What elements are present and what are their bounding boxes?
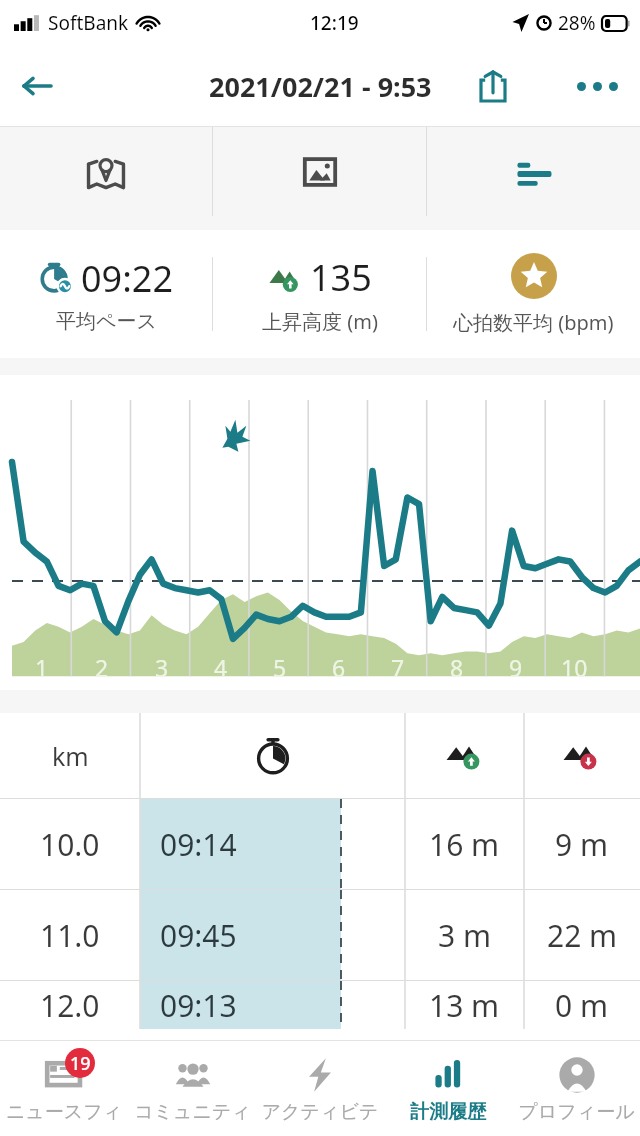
staticText: 上昇高度 (m): [262, 308, 378, 335]
staticText: 10: [561, 652, 588, 683]
staticText: アクティビティ: [256, 1100, 384, 1124]
button[interactable]: Photos: [213, 127, 426, 216]
staticText: 09:22: [81, 254, 174, 303]
button[interactable]: 11.0: [0, 890, 640, 980]
staticText: 19: [70, 1051, 91, 1076]
button[interactable]: 19: [0, 1041, 128, 1136]
staticText: 9: [509, 652, 523, 683]
staticText: 11.0: [40, 915, 100, 956]
staticText: 135: [310, 253, 372, 302]
button[interactable]: アクティビティ: [256, 1041, 384, 1136]
button[interactable]: Back: [6, 56, 66, 116]
button[interactable]: プロフィール: [512, 1041, 640, 1136]
staticText: 16 m: [429, 824, 500, 865]
staticText: 5: [273, 652, 287, 683]
button[interactable]: Map: [0, 127, 212, 216]
staticText: 3: [155, 652, 169, 683]
button[interactable]: Average pace: [0, 230, 212, 358]
staticText: 2: [95, 652, 109, 683]
staticText: 8: [450, 652, 464, 683]
staticText: 13 m: [429, 985, 500, 1026]
staticText: km: [52, 739, 89, 773]
staticText: 22 m: [547, 915, 618, 956]
button[interactable]: Average heart rate: [427, 230, 640, 358]
staticText: 1: [35, 652, 49, 683]
staticText: SoftBank: [48, 10, 129, 36]
staticText: 28%: [558, 10, 596, 36]
staticText: 09:13: [160, 985, 237, 1026]
staticText: 10.0: [40, 824, 100, 865]
button[interactable]: Elevation gain: [213, 230, 426, 358]
staticText: 3 m: [438, 915, 492, 956]
button[interactable]: 10.0: [0, 799, 640, 889]
staticText: 2021/02/21 - 9:53: [209, 68, 432, 105]
staticText: 09:14: [160, 824, 237, 865]
staticText: コミュニティ: [134, 1100, 251, 1124]
staticText: 4: [214, 652, 228, 683]
button[interactable]: Share: [464, 57, 522, 115]
staticText: 6: [332, 652, 346, 683]
staticText: 9 m: [555, 824, 609, 865]
staticText: プロフィール: [518, 1100, 635, 1124]
staticText: 7: [391, 652, 405, 683]
button[interactable]: コミュニティ: [128, 1041, 256, 1136]
staticText: 0 m: [555, 985, 609, 1026]
staticText: 平均ペース: [56, 309, 157, 334]
button[interactable]: 12.0: [0, 981, 640, 1029]
staticText: 12.0: [40, 985, 100, 1026]
staticText: 09:45: [160, 915, 237, 956]
staticText: 12:19: [310, 10, 359, 36]
staticText: 計測履歴: [410, 1100, 486, 1124]
button[interactable]: More options: [566, 55, 628, 117]
staticText: 心拍数平均 (bpm): [453, 309, 614, 336]
button[interactable]: Statistics: [427, 127, 640, 216]
button[interactable]: 計測履歴: [384, 1041, 512, 1136]
staticText: ニュースフィード: [0, 1100, 128, 1124]
